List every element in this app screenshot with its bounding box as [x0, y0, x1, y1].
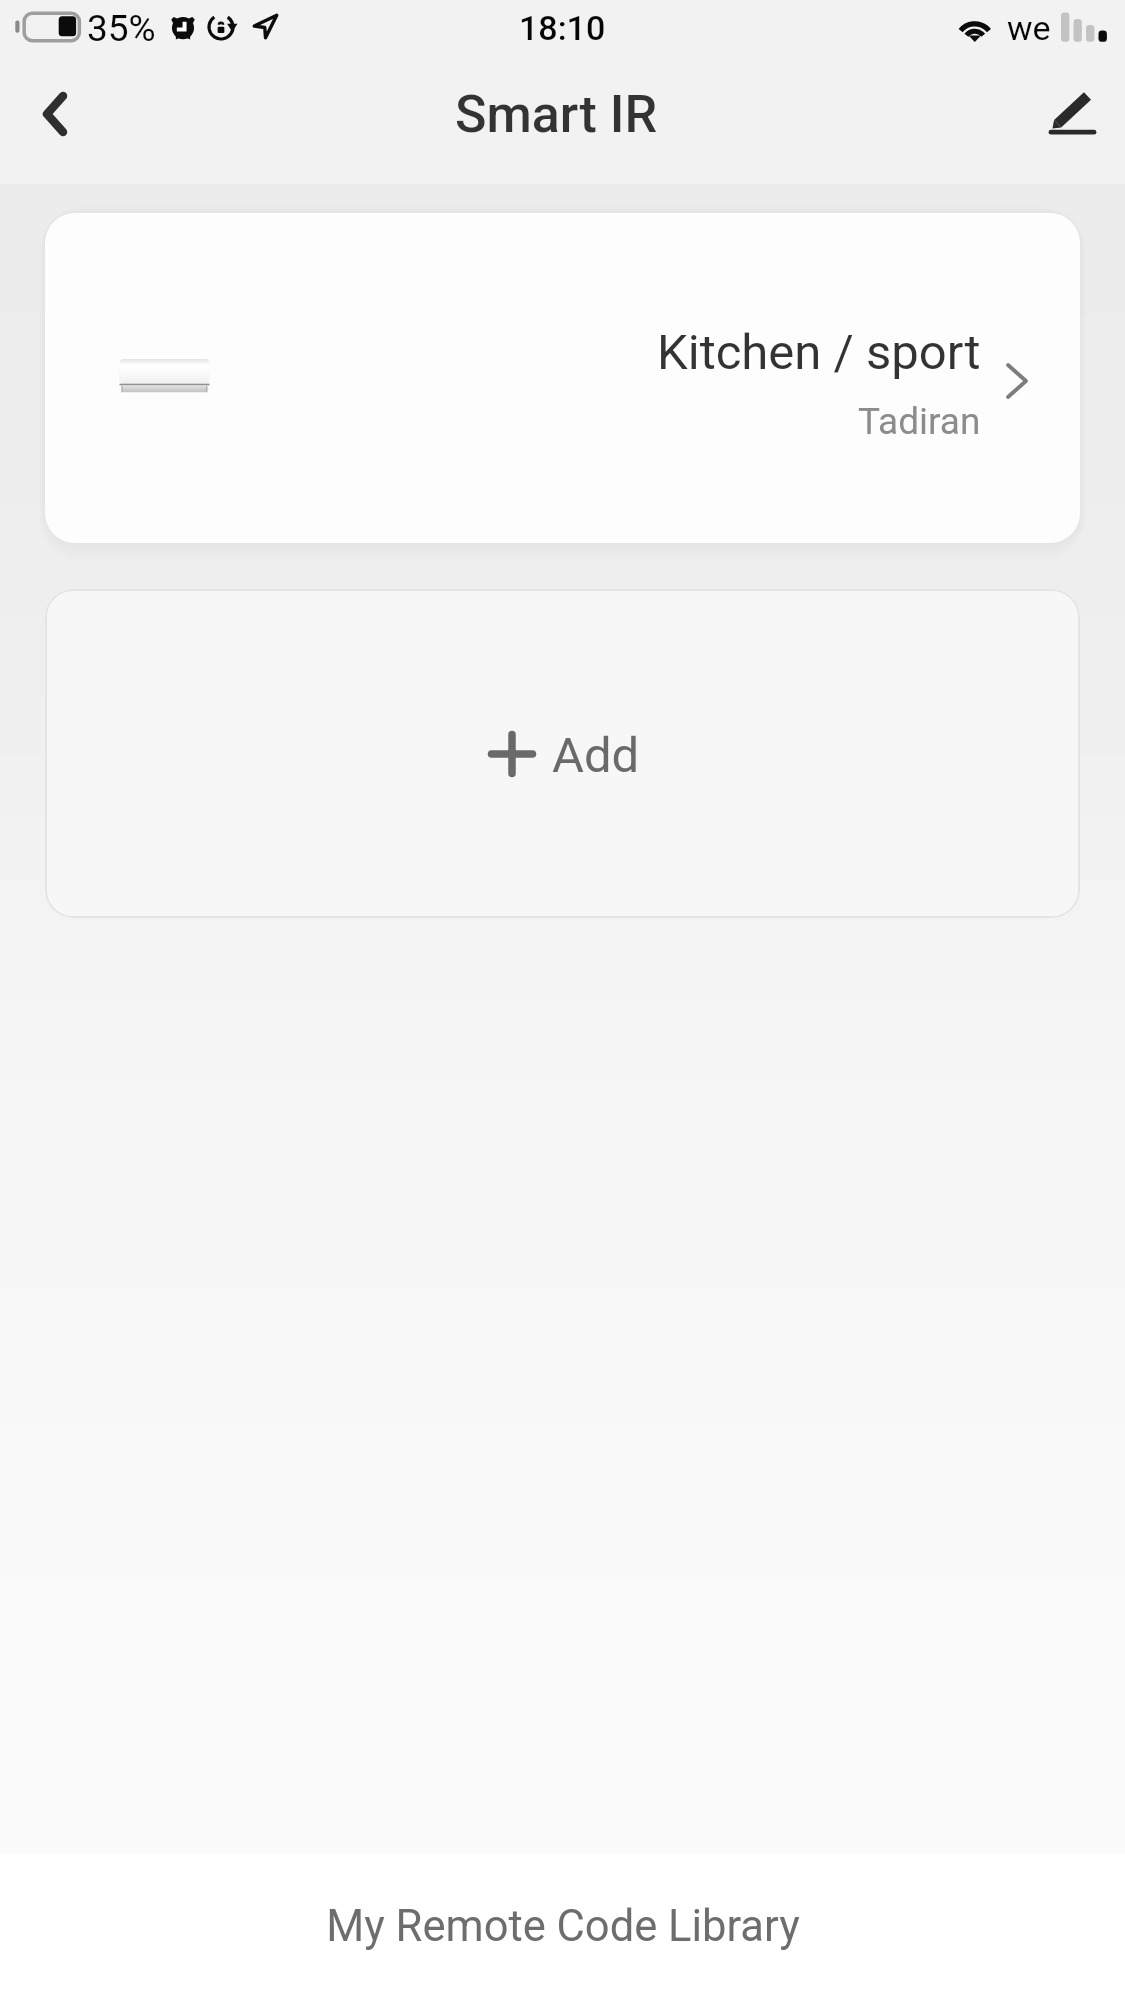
staticText: 35%	[87, 7, 156, 50]
button[interactable]: Add	[45, 589, 1080, 918]
button[interactable]: Edit	[1015, 62, 1125, 184]
staticText: Add	[552, 727, 640, 784]
button[interactable]: Back	[0, 62, 110, 184]
staticText: My Remote Code Library	[326, 1901, 800, 1952]
staticText: we	[1007, 8, 1051, 48]
staticText: Smart IR	[455, 84, 658, 145]
staticText: Kitchen / sport	[657, 324, 981, 381]
staticText: Tadiran	[858, 400, 981, 443]
button[interactable]: Kitchen / sport	[45, 213, 1080, 543]
staticText: 18:10	[519, 8, 606, 48]
button[interactable]: My Remote Code Library	[0, 1850, 1125, 2000]
